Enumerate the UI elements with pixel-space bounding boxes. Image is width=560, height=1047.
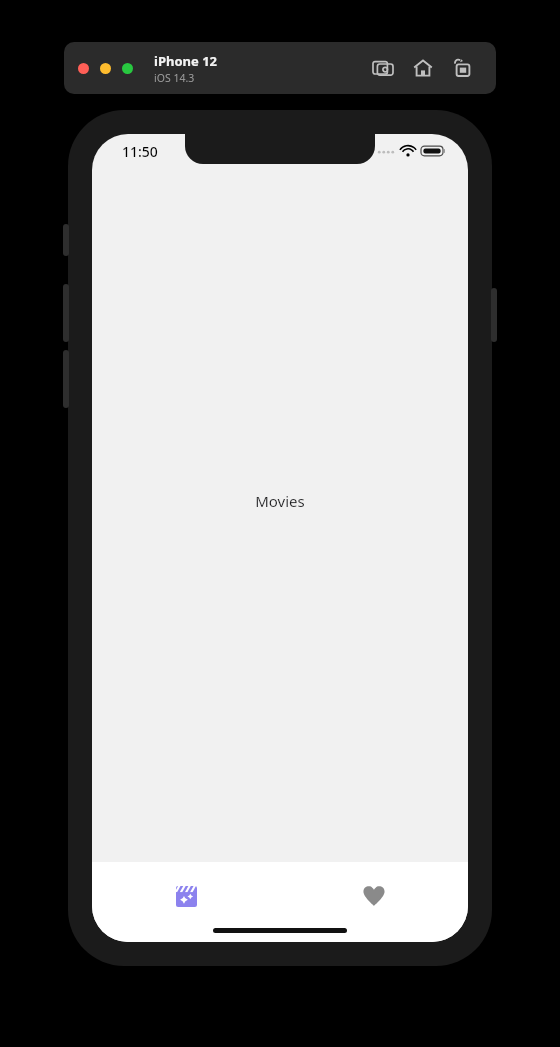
button[interactable]: Movies xyxy=(92,876,280,916)
staticText: iOS 14.3 xyxy=(154,71,195,85)
button[interactable]: Home xyxy=(408,53,438,83)
button[interactable]: Favorites xyxy=(280,876,468,916)
button[interactable]: Maximize xyxy=(122,63,133,74)
staticText: Movies xyxy=(255,491,305,511)
button[interactable]: Screenshot xyxy=(368,53,398,83)
staticText: iPhone 12 xyxy=(154,52,217,70)
button[interactable]: Minimize xyxy=(100,63,111,74)
button[interactable]: Rotate xyxy=(448,53,478,83)
staticText: 11:50 xyxy=(122,142,158,161)
button[interactable]: Close xyxy=(78,63,89,74)
